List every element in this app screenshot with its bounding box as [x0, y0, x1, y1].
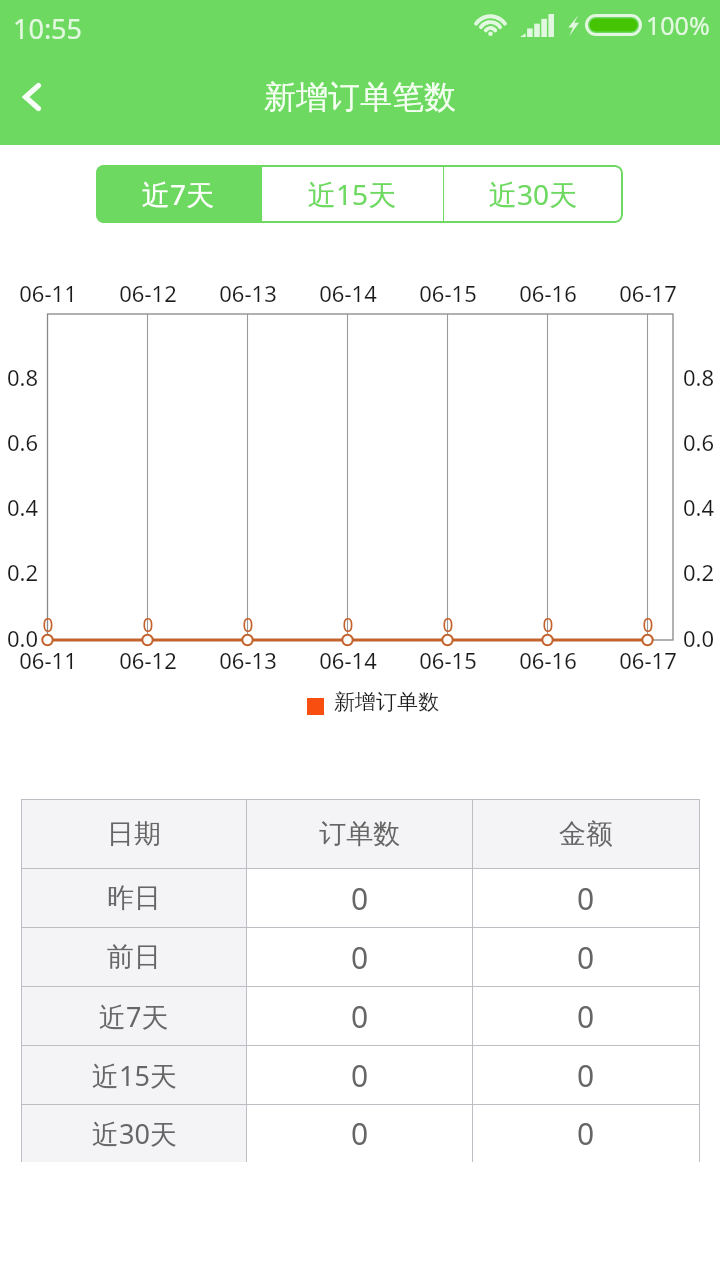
staticText: 0.8: [0, 362, 38, 392]
staticText: 0: [577, 1055, 595, 1096]
staticText: 06-13: [203, 645, 293, 675]
button[interactable]: Back: [0, 65, 64, 129]
staticText: 新增订单笔数: [0, 77, 720, 117]
staticText: 金额: [559, 817, 613, 851]
staticText: 0: [328, 612, 368, 638]
staticText: 0.6: [683, 427, 720, 457]
staticText: 06-16: [503, 278, 593, 308]
staticText: 近7天: [142, 175, 215, 213]
staticText: 06-14: [303, 645, 393, 675]
staticText: 0.6: [0, 427, 38, 457]
button[interactable]: 近7天: [96, 165, 261, 223]
button[interactable]: 近30天: [444, 165, 623, 223]
staticText: 订单数: [319, 817, 400, 851]
staticText: 昨日: [107, 881, 161, 915]
button[interactable]: 近7天: [21, 987, 700, 1045]
staticText: 06-12: [103, 278, 193, 308]
staticText: 0: [351, 1055, 369, 1096]
staticText: 0.4: [0, 492, 38, 522]
staticText: 0: [351, 937, 369, 978]
staticText: 06-13: [203, 278, 293, 308]
button[interactable]: 近15天: [21, 1046, 700, 1104]
staticText: 0: [351, 996, 369, 1037]
staticText: 0.0: [0, 623, 38, 653]
staticText: 日期: [107, 817, 161, 851]
staticText: 06-11: [3, 645, 93, 675]
button[interactable]: 前日: [21, 928, 700, 986]
staticText: 06-17: [603, 645, 693, 675]
staticText: 06-12: [103, 645, 193, 675]
staticText: 0: [28, 612, 68, 638]
staticText: 06-11: [3, 278, 93, 308]
staticText: 0: [351, 1113, 369, 1154]
staticText: 0: [428, 612, 468, 638]
staticText: 0: [351, 878, 369, 919]
staticText: 0: [577, 1113, 595, 1154]
staticText: 新增订单数: [334, 689, 439, 715]
button[interactable]: 近15天: [262, 165, 443, 223]
staticText: 近30天: [92, 1115, 177, 1152]
staticText: 0: [577, 937, 595, 978]
staticText: 0.8: [683, 362, 720, 392]
button[interactable]: 昨日: [21, 869, 700, 927]
staticText: 前日: [107, 940, 161, 974]
staticText: 0: [628, 612, 668, 638]
staticText: 近15天: [308, 175, 397, 213]
staticText: 100%: [646, 8, 710, 42]
staticText: 0: [577, 878, 595, 919]
staticText: 06-15: [403, 278, 493, 308]
staticText: 0: [528, 612, 568, 638]
staticText: 10:55: [13, 10, 83, 47]
button[interactable]: 近30天: [21, 1105, 700, 1162]
staticText: 0.4: [683, 492, 720, 522]
staticText: 06-16: [503, 645, 593, 675]
staticText: 06-17: [603, 278, 693, 308]
staticText: 近7天: [99, 998, 169, 1035]
staticText: 0: [228, 612, 268, 638]
staticText: 近30天: [489, 175, 578, 213]
staticText: 0.0: [683, 623, 720, 653]
staticText: 0.2: [683, 557, 720, 587]
staticText: 近15天: [92, 1057, 177, 1094]
staticText: 0: [577, 996, 595, 1037]
staticText: 06-14: [303, 278, 393, 308]
staticText: 0.2: [0, 557, 38, 587]
staticText: 06-15: [403, 645, 493, 675]
staticText: 0: [128, 612, 168, 638]
